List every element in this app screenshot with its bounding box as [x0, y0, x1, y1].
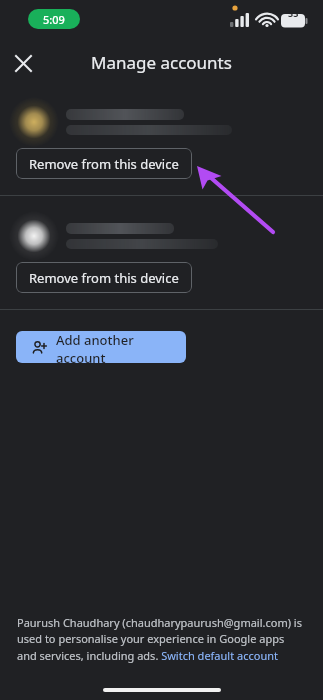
- button[interactable]: Paurush Chaudhary (chaudharypaurush@gmai…: [0, 615, 323, 664]
- staticText: Manage accounts: [91, 51, 232, 74]
- button[interactable]: [0, 210, 323, 262]
- button[interactable]: Remove from this device: [16, 262, 192, 293]
- button[interactable]: Add another account: [16, 331, 186, 363]
- staticText: 33: [288, 7, 299, 19]
- staticText: Remove from this device: [29, 269, 179, 287]
- button[interactable]: [0, 96, 323, 148]
- staticText: Add another account: [56, 331, 186, 363]
- button[interactable]: Remove from this device: [16, 148, 192, 179]
- staticText: Remove from this device: [29, 155, 179, 173]
- staticText: Paurush Chaudhary (chaudharypaurush@gmai…: [17, 615, 306, 664]
- button[interactable]: Close: [5, 45, 41, 81]
- staticText: 5:09: [43, 12, 65, 27]
